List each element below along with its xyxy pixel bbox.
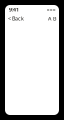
staticText: < Back (8, 15, 24, 22)
staticText: 9:41 (9, 6, 19, 13)
staticText: A B (48, 15, 56, 22)
staticText: o o o (47, 7, 55, 12)
